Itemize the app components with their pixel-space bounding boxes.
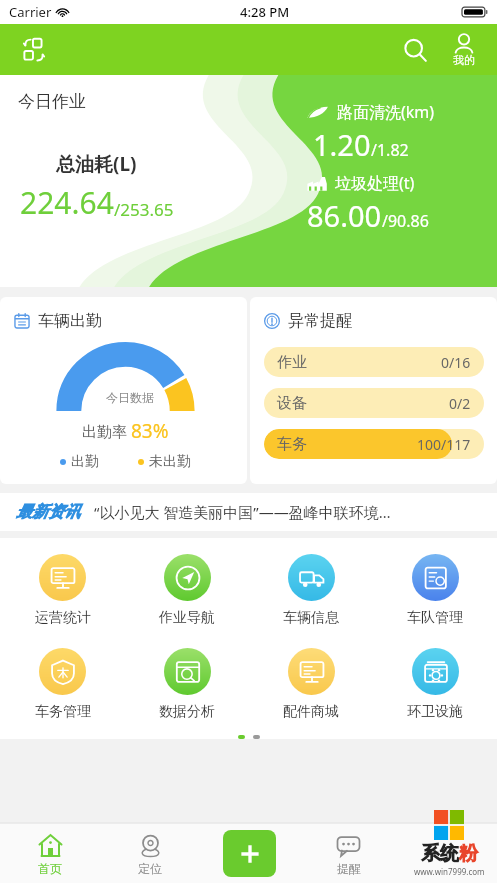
button[interactable]: 我的 xyxy=(441,32,487,69)
button[interactable]: 车辆信息 xyxy=(249,552,373,629)
button[interactable]: 作业导航 xyxy=(125,552,249,629)
button[interactable]: 运营统计 xyxy=(0,552,125,629)
button[interactable]: 首页 xyxy=(0,823,100,883)
staticText: 今日数据 xyxy=(106,390,154,405)
staticText: 数据分析 xyxy=(159,703,215,721)
staticText: 出勤率 xyxy=(82,421,131,441)
staticText: 运营统计 xyxy=(35,609,91,627)
staticText: /253.65 xyxy=(114,198,174,221)
button[interactable]: 提醒 xyxy=(299,823,398,883)
staticText: 粉 xyxy=(459,842,478,866)
staticText: 定位 xyxy=(138,861,162,876)
button[interactable]: 配件商城 xyxy=(249,646,373,723)
staticText: 车辆出勤 xyxy=(38,311,102,331)
button[interactable]: 数据分析 xyxy=(125,646,249,723)
button[interactable]: 定位 xyxy=(100,823,200,883)
staticText: Carrier xyxy=(9,3,52,21)
staticText: 0/2 xyxy=(449,394,471,413)
staticText: 出勤 xyxy=(71,453,99,471)
staticText: 车务管理 xyxy=(35,703,91,721)
staticText: 224.64 xyxy=(20,182,114,223)
staticText: 垃圾处理(t) xyxy=(335,172,415,194)
staticText: 未出勤 xyxy=(149,453,191,471)
staticText: 配件商城 xyxy=(283,703,339,721)
button[interactable]: 作业 xyxy=(264,347,484,377)
button[interactable]: 车务 xyxy=(264,429,484,459)
staticText: 总油耗(L) xyxy=(56,151,137,177)
staticText: 设备 xyxy=(277,394,307,413)
staticText: 车辆信息 xyxy=(283,609,339,627)
staticText: 路面清洗(km) xyxy=(337,101,435,123)
staticText: 今日作业 xyxy=(18,91,86,112)
staticText: 作业 xyxy=(277,353,307,372)
staticText: 最新资讯 xyxy=(16,502,80,522)
staticText: 车务 xyxy=(277,435,307,454)
button[interactable]: Search xyxy=(393,28,437,72)
button[interactable]: 环卫设施 xyxy=(373,646,497,723)
button[interactable]: 异常提醒 xyxy=(250,297,497,484)
staticText: 作业导航 xyxy=(159,609,215,627)
button[interactable]: 车务管理 xyxy=(0,646,125,723)
button[interactable]: Add xyxy=(223,830,276,877)
staticText: 提醒 xyxy=(337,861,361,876)
staticText: 4:28 PM xyxy=(240,3,290,21)
staticText: 83% xyxy=(131,418,169,444)
staticText: 0/16 xyxy=(441,353,471,372)
staticText: 我的 xyxy=(453,53,475,67)
button[interactable]: 车辆出勤 xyxy=(0,297,247,484)
staticText: /1.82 xyxy=(371,139,409,161)
staticText: www.win7999.com xyxy=(414,866,485,877)
staticText: 异常提醒 xyxy=(288,311,352,331)
staticText: 1.20 xyxy=(313,125,371,164)
staticText: /90.86 xyxy=(382,210,429,232)
button[interactable]: Scan xyxy=(14,30,54,70)
staticText: 环卫设施 xyxy=(407,703,463,721)
staticText: 86.00 xyxy=(307,196,382,235)
button[interactable]: 设备 xyxy=(264,388,484,418)
staticText: 首页 xyxy=(38,861,62,876)
staticText: “以小见大 智造美丽中国”——盈峰中联环境… xyxy=(94,502,391,522)
staticText: 100/117 xyxy=(417,435,471,454)
button[interactable]: 车队管理 xyxy=(373,552,497,629)
button[interactable]: 最新资讯 xyxy=(0,493,497,531)
staticText: 车队管理 xyxy=(407,609,463,627)
staticText: 系统 xyxy=(421,842,459,866)
